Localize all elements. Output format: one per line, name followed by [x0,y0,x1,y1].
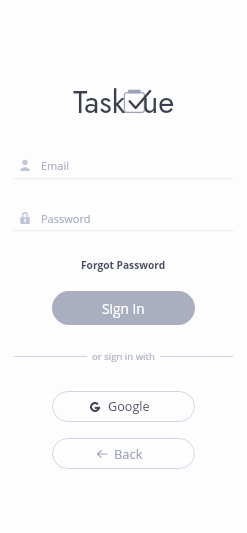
staticText: or sign in with [92,350,155,363]
button[interactable]: Back [52,438,195,469]
staticText: Email [41,158,70,173]
button[interactable]: Sign In [52,291,195,325]
staticText: Sign In [102,299,145,318]
staticText: ue [142,80,175,125]
staticText: Forgot Password [81,258,166,272]
staticText: Password [41,211,91,226]
staticText: Google [108,398,150,415]
button[interactable]: Google [52,391,195,422]
button[interactable]: Email [13,153,234,177]
button[interactable]: Forgot Password [0,255,247,274]
staticText: Back [114,445,143,463]
staticText: Task [73,80,126,125]
button[interactable]: Password [13,206,234,230]
